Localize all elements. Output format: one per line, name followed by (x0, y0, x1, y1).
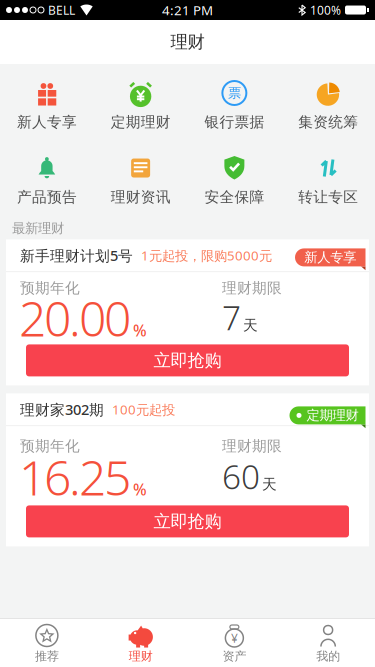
staticText: 天 (243, 316, 258, 334)
staticText: 产品预告 (17, 188, 77, 206)
staticText: 立即抢购 (153, 350, 221, 371)
staticText: 新人专享 (17, 113, 77, 131)
button[interactable]: 推荐 (0, 624, 94, 664)
staticText: 立即抢购 (153, 511, 221, 532)
staticText: 60 (222, 454, 260, 498)
staticText: 新人专享 (304, 249, 356, 266)
button[interactable]: 我的 (281, 624, 375, 664)
staticText: % (133, 479, 147, 500)
staticText: 100% (310, 2, 341, 18)
staticText: 定期理财 (111, 113, 171, 131)
staticText: 1元起投，限购5000元 (141, 247, 272, 264)
staticText: % (133, 320, 147, 341)
button[interactable]: 票 (187, 78, 281, 131)
staticText: 天 (262, 475, 277, 493)
staticText: 预期年化 (20, 437, 80, 455)
staticText: 银行票据 (204, 113, 264, 131)
button[interactable]: ¥ (187, 624, 281, 664)
staticText: ¥ (231, 630, 238, 646)
staticText: 最新理财 (12, 220, 64, 236)
staticText: 100元起投 (112, 401, 175, 418)
staticText: BELL (48, 2, 75, 18)
button[interactable]: 安全保障 (187, 153, 281, 206)
staticText: 理财 (170, 31, 204, 53)
staticText: 理财资讯 (111, 188, 171, 206)
staticText: 预期年化 (20, 279, 80, 297)
button[interactable]: 集资统筹 (281, 78, 375, 131)
staticText: 我的 (316, 649, 340, 664)
staticText: 16.25 (19, 445, 131, 509)
staticText: 定期理财 (306, 407, 358, 424)
staticText: 理财期限 (222, 437, 282, 455)
staticText: 理财期限 (222, 279, 282, 297)
staticText: 票 (228, 85, 241, 101)
button[interactable]: 产品预告 (0, 153, 94, 206)
button[interactable]: 新人专享 (0, 78, 94, 131)
button[interactable]: 新手理财计划5号 (6, 239, 369, 385)
button[interactable]: 转让专区 (281, 153, 375, 206)
staticText: 安全保障 (204, 188, 264, 206)
staticText: 理财家302期 (20, 400, 104, 419)
staticText: 资产 (222, 649, 246, 664)
button[interactable]: 立即抢购 (26, 505, 349, 537)
staticText: 4:21 PM (162, 1, 213, 19)
staticText: 20.00 (19, 286, 131, 350)
staticText: 集资统筹 (298, 113, 358, 131)
staticText: 新手理财计划5号 (20, 246, 133, 265)
staticText: 7 (222, 295, 241, 339)
button[interactable]: 理财家302期 (6, 393, 369, 546)
staticText: 转让专区 (298, 188, 358, 206)
staticText: 理财 (129, 649, 153, 664)
button[interactable]: 定期理财 (94, 78, 188, 131)
button[interactable]: 理财资讯 (94, 153, 188, 206)
button[interactable]: 立即抢购 (26, 344, 349, 376)
button[interactable]: 理财 (94, 624, 188, 664)
staticText: 推荐 (35, 649, 59, 664)
